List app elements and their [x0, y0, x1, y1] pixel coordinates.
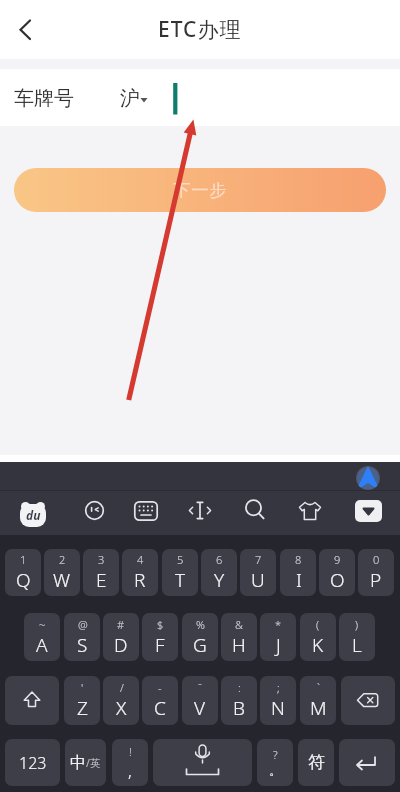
button[interactable]	[5, 676, 59, 725]
staticText: ?	[273, 747, 278, 762]
staticText: P	[370, 567, 382, 593]
button[interactable]: :	[221, 676, 257, 725]
button[interactable]: 0	[358, 549, 394, 596]
staticText: (	[316, 617, 320, 632]
staticText: &	[235, 617, 243, 632]
button[interactable]: 2	[44, 549, 80, 596]
staticText: ETC办理	[158, 15, 242, 44]
button[interactable]: 中	[65, 739, 106, 786]
staticText: S	[77, 632, 88, 658]
button[interactable]: 车牌号	[0, 69, 400, 126]
button[interactable]	[84, 500, 105, 521]
staticText: *	[275, 617, 282, 632]
staticText: ,	[128, 759, 132, 782]
staticText: 3	[98, 552, 105, 567]
staticText: B	[233, 695, 245, 721]
staticText: X	[116, 695, 127, 721]
staticText: 车牌号	[14, 86, 74, 111]
staticText: G	[193, 632, 207, 658]
button[interactable]: !	[112, 739, 148, 786]
button[interactable]: /	[103, 676, 139, 725]
staticText: F	[155, 632, 165, 658]
staticText: `	[317, 680, 320, 695]
button[interactable]: `	[300, 676, 336, 725]
staticText: W	[53, 567, 71, 593]
button[interactable]: ~	[24, 613, 60, 661]
staticText: T	[175, 567, 186, 593]
button[interactable]: *	[260, 613, 296, 661]
staticText: 符	[308, 752, 325, 773]
staticText: 4	[137, 552, 144, 567]
staticText: '	[81, 680, 84, 695]
staticText: 5	[177, 552, 184, 567]
staticText: U	[251, 567, 265, 593]
staticText: 9	[334, 552, 341, 567]
staticText: I	[296, 567, 302, 593]
button[interactable]	[298, 501, 322, 522]
staticText: V	[194, 695, 206, 721]
staticText: 6	[216, 552, 223, 567]
staticText: )	[355, 617, 359, 632]
staticText: J	[276, 632, 281, 658]
button[interactable]: 9	[319, 549, 355, 596]
button[interactable]	[339, 739, 395, 786]
staticText: ;	[277, 680, 280, 695]
button[interactable]: '	[64, 676, 100, 725]
button[interactable]: 123	[5, 739, 60, 786]
staticText: $	[157, 617, 164, 632]
button[interactable]: 3	[83, 549, 119, 596]
button[interactable]: ?	[257, 739, 293, 786]
button[interactable]	[355, 500, 382, 522]
staticText: Y	[214, 567, 225, 593]
staticText: #	[117, 617, 125, 632]
staticText: @	[78, 617, 88, 632]
button[interactable]: du	[19, 502, 47, 527]
staticText: R	[134, 567, 146, 593]
button[interactable]: (	[300, 613, 336, 661]
button[interactable]: ˉ	[182, 676, 218, 725]
button[interactable]: 1	[5, 549, 41, 596]
button[interactable]: 8	[280, 549, 316, 596]
button[interactable]: @	[64, 613, 100, 661]
button[interactable]: 6	[201, 549, 237, 596]
button[interactable]: &	[221, 613, 257, 661]
staticText: 下一步	[173, 180, 227, 201]
staticText: 7	[255, 552, 262, 567]
button[interactable]: 4	[122, 549, 158, 596]
staticText: Z	[77, 695, 88, 721]
button[interactable]: $	[142, 613, 178, 661]
button[interactable]: 5	[162, 549, 198, 596]
button[interactable]: 下一步	[14, 168, 386, 212]
button[interactable]	[134, 501, 158, 521]
button[interactable]	[244, 499, 266, 522]
staticText: 8	[295, 552, 302, 567]
button[interactable]	[153, 739, 252, 786]
staticText: /	[120, 680, 124, 695]
staticText: ˉ	[198, 680, 202, 695]
button[interactable]	[188, 500, 212, 521]
button[interactable]	[8, 8, 48, 52]
staticText: 123	[19, 752, 47, 774]
staticText: 1	[20, 552, 27, 567]
staticText: O	[330, 567, 345, 593]
staticText: :	[238, 680, 241, 695]
button[interactable]	[356, 466, 380, 490]
staticText: du	[26, 507, 41, 523]
button[interactable]: -	[142, 676, 178, 725]
staticText: 沪	[120, 86, 140, 111]
staticText: ~	[39, 617, 46, 632]
button[interactable]	[341, 676, 395, 725]
staticText: /英	[86, 756, 101, 770]
button[interactable]: 符	[298, 739, 334, 786]
button[interactable]: )	[339, 613, 375, 661]
staticText: K	[312, 632, 324, 658]
staticText: %	[196, 617, 205, 632]
staticText: 0	[373, 552, 380, 567]
staticText: !	[129, 744, 132, 759]
button[interactable]: #	[103, 613, 139, 661]
button[interactable]: ;	[260, 676, 296, 725]
staticText: L	[352, 632, 362, 658]
button[interactable]: %	[182, 613, 218, 661]
staticText: 。	[269, 762, 282, 778]
button[interactable]: 7	[240, 549, 276, 596]
